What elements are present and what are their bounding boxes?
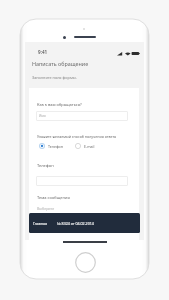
staticText: Имя xyxy=(39,114,46,118)
staticText: Телефон xyxy=(37,163,54,168)
staticText: Заполните поля формы. xyxy=(32,75,77,80)
staticText: № 8324 от 04.02.2014 xyxy=(57,221,94,226)
staticText: E-mail xyxy=(84,144,95,149)
staticText: Укажите желаемый способ получения ответа xyxy=(37,134,117,139)
button[interactable] xyxy=(36,176,128,186)
staticText: Как к вам обращаться? xyxy=(37,102,82,107)
button[interactable]: Имя xyxy=(36,111,128,121)
staticText: Выберите xyxy=(37,206,55,211)
staticText: Написать обращение xyxy=(32,60,89,67)
staticText: Тема сообщения xyxy=(37,195,70,200)
staticText: Главная xyxy=(33,221,48,226)
button[interactable]: E-mail xyxy=(75,143,95,149)
staticText: 9:41 xyxy=(38,49,48,55)
staticText: Телефон xyxy=(48,144,63,149)
button[interactable]: Телефон xyxy=(39,143,63,149)
button[interactable]: Главная xyxy=(29,213,140,233)
